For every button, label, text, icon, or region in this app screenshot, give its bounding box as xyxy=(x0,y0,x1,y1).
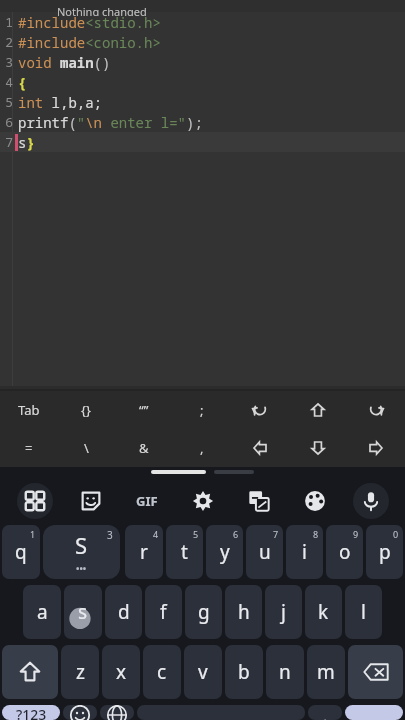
button[interactable]: p xyxy=(366,525,403,579)
button[interactable]: a xyxy=(23,585,61,639)
button[interactable]: i xyxy=(286,525,323,579)
staticText: 4 xyxy=(153,528,159,540)
staticText: #include<conio.h> xyxy=(18,33,161,52)
staticText: 1 xyxy=(30,528,36,540)
button[interactable]: z xyxy=(61,645,99,699)
button[interactable]: n xyxy=(266,645,304,699)
button[interactable]: Backspace xyxy=(348,645,403,699)
staticText: l xyxy=(361,599,366,625)
button[interactable]: v xyxy=(184,645,222,699)
button[interactable]: {} xyxy=(57,391,115,429)
button[interactable]: \ xyxy=(57,429,115,467)
button[interactable]: q xyxy=(2,525,40,579)
button[interactable]: r xyxy=(125,525,163,579)
button[interactable]: Space xyxy=(137,705,305,720)
button[interactable]: Redo xyxy=(347,391,405,429)
button[interactable]: g xyxy=(185,585,222,639)
button[interactable]: Undo xyxy=(231,391,289,429)
button[interactable]: h xyxy=(225,585,262,639)
button[interactable]: ?123 xyxy=(2,705,60,720)
staticText: r xyxy=(140,539,148,565)
staticText: c xyxy=(157,659,167,685)
button[interactable]: d xyxy=(105,585,142,639)
staticText: ••• xyxy=(76,562,87,574)
staticText: Nothing changed xyxy=(57,4,147,16)
staticText: h xyxy=(238,599,250,625)
staticText: p xyxy=(379,539,391,565)
staticText: int l,b,a; xyxy=(18,93,102,112)
staticText: 2 xyxy=(2,33,13,51)
staticText: ; xyxy=(200,401,204,419)
button[interactable]: S xyxy=(43,525,120,579)
button[interactable]: Shift xyxy=(2,645,58,699)
staticText: k xyxy=(318,599,329,625)
button[interactable]: Move down xyxy=(289,429,347,467)
button[interactable]: y xyxy=(206,525,243,579)
staticText: s xyxy=(78,599,88,625)
button[interactable]: b xyxy=(225,645,263,699)
button[interactable]: Enter xyxy=(345,705,403,720)
button[interactable]: o xyxy=(326,525,363,579)
button[interactable]: Change keyboard language xyxy=(100,705,134,720)
staticText: #include<stdio.h> xyxy=(18,13,161,32)
staticText: t xyxy=(181,539,188,565)
staticText: a xyxy=(37,599,48,625)
staticText: n xyxy=(279,659,291,685)
button[interactable]: ; xyxy=(173,391,231,429)
button[interactable]: , xyxy=(173,429,231,467)
button[interactable] xyxy=(84,525,122,579)
button[interactable]: f xyxy=(145,585,182,639)
button[interactable]: Translate xyxy=(231,477,287,525)
button[interactable] xyxy=(43,525,81,579)
staticText: g xyxy=(198,599,210,625)
staticText: 5 xyxy=(193,528,199,540)
staticText: 4 xyxy=(2,73,13,91)
button[interactable]: k xyxy=(305,585,342,639)
button[interactable]: & xyxy=(115,429,173,467)
button[interactable]: Settings xyxy=(175,477,231,525)
staticText: 1 xyxy=(2,13,13,31)
button[interactable]: Move up xyxy=(289,391,347,429)
staticText: , xyxy=(200,439,204,457)
button[interactable]: t xyxy=(166,525,203,579)
staticText: 6 xyxy=(233,528,239,540)
staticText: f xyxy=(160,599,167,625)
button[interactable]: s xyxy=(64,585,102,639)
button[interactable]: Move right xyxy=(347,429,405,467)
button[interactable]: u xyxy=(246,525,283,579)
staticText: {} xyxy=(81,401,91,419)
button[interactable]: j xyxy=(265,585,302,639)
button[interactable]: Keyboard modes xyxy=(6,477,63,525)
button[interactable]: Themes xyxy=(287,477,343,525)
button[interactable]: Voice input xyxy=(343,477,399,525)
staticText: 7 xyxy=(2,133,13,151)
button[interactable]: Tab xyxy=(0,391,57,429)
button[interactable]: c xyxy=(143,645,181,699)
staticText: d xyxy=(118,599,130,625)
button[interactable]: Emoji xyxy=(63,705,97,720)
button[interactable]: Stickers xyxy=(63,477,119,525)
staticText: void main() xyxy=(18,53,111,72)
staticText: & xyxy=(139,439,149,457)
staticText: = xyxy=(25,439,33,457)
staticText: 0 xyxy=(393,528,399,540)
staticText: z xyxy=(76,659,85,685)
staticText: s} xyxy=(18,133,35,152)
button[interactable]: m xyxy=(307,645,345,699)
staticText: b xyxy=(238,659,250,685)
staticText: o xyxy=(339,539,351,565)
button[interactable]: “” xyxy=(115,391,173,429)
staticText: q xyxy=(15,539,27,565)
button[interactable]: l xyxy=(345,585,382,639)
button[interactable]: . xyxy=(308,705,342,720)
button[interactable]: = xyxy=(0,429,57,467)
button[interactable]: x xyxy=(102,645,140,699)
button[interactable]: Move left xyxy=(231,429,289,467)
staticText: u xyxy=(259,539,271,565)
staticText: ?123 xyxy=(16,705,47,720)
staticText: 8 xyxy=(313,528,319,540)
staticText: 5 xyxy=(2,93,13,111)
button[interactable]: GIF xyxy=(119,477,175,525)
staticText: \ xyxy=(84,439,89,457)
staticText: printf("\n enter l="); xyxy=(18,113,203,132)
